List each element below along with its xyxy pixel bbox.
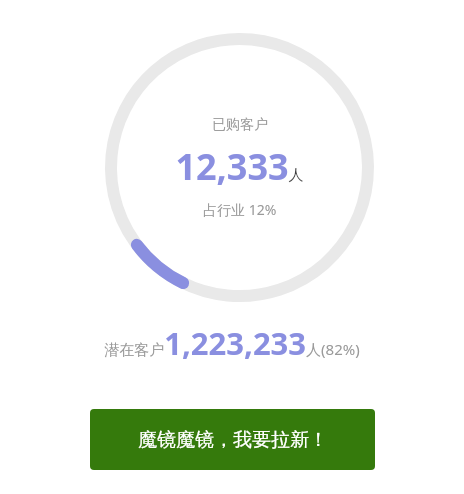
staticText: 占行业 12%	[203, 200, 277, 219]
staticText: 魔镜魔镜，我要拉新！	[138, 428, 328, 452]
button[interactable]: 魔镜魔镜，我要拉新！	[90, 409, 375, 470]
staticText: 12,333人	[175, 142, 304, 191]
staticText: 已购客户	[212, 116, 268, 134]
staticText: 潜在客户1,223,233人(82%)	[104, 322, 360, 362]
